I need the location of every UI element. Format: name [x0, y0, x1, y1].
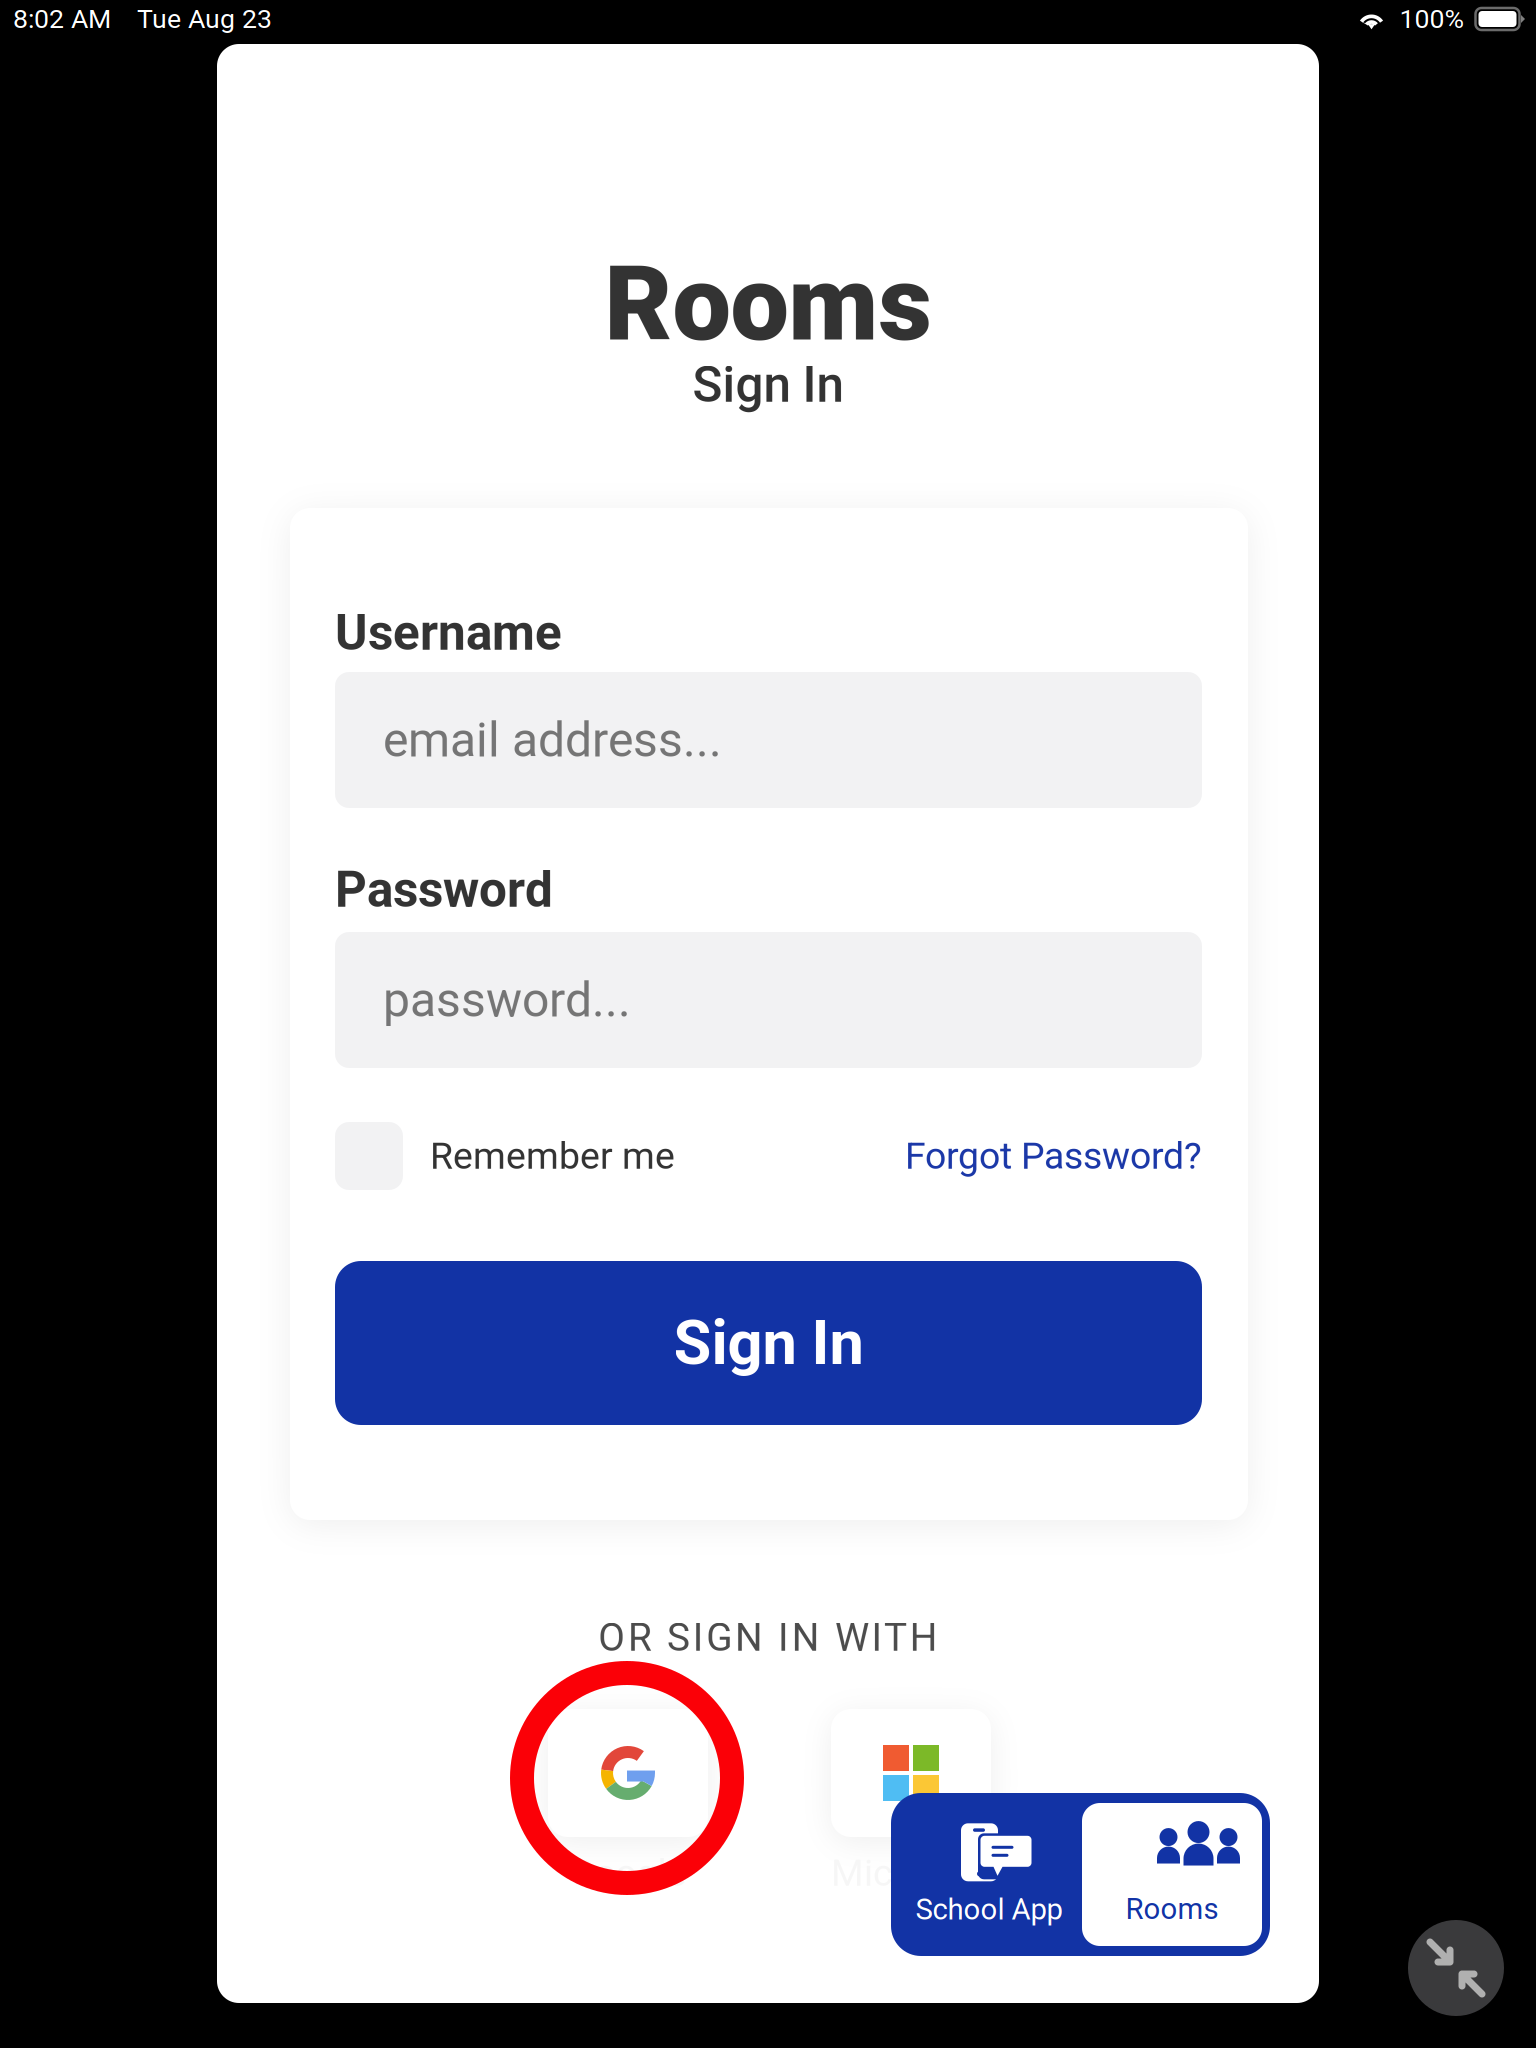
button[interactable]: School App: [899, 1805, 1079, 1945]
staticText: Microsoft: [831, 1851, 991, 1895]
staticText: Remember me: [430, 1134, 675, 1178]
staticText: 8:02 AM: [13, 3, 111, 35]
staticText: OR SIGN IN WITH: [598, 1615, 938, 1660]
staticText: School App: [915, 1892, 1062, 1927]
staticText: password...: [383, 972, 631, 1028]
staticText: Tue Aug 23: [137, 3, 272, 35]
button[interactable]: Remember me: [335, 1122, 675, 1190]
button[interactable]: Google: [548, 1709, 708, 1895]
staticText: 100%: [1399, 3, 1464, 35]
staticText: Forgot Password?: [905, 1134, 1202, 1178]
staticText: Sign In: [673, 1307, 863, 1379]
staticText: email address...: [383, 712, 722, 768]
staticText: Password: [335, 861, 553, 919]
button[interactable]: Password: [335, 932, 1202, 1068]
button[interactable]: Forgot Password?: [905, 1134, 1202, 1178]
button[interactable]: Microsoft: [831, 1709, 991, 1895]
staticText: Username: [335, 604, 562, 662]
button[interactable]: Sign In: [335, 1261, 1202, 1425]
staticText: Sign In: [692, 356, 843, 414]
button[interactable]: Minimize: [1408, 1920, 1504, 2016]
staticText: Rooms: [1125, 1892, 1218, 1926]
button[interactable]: Username: [335, 672, 1202, 808]
staticText: Rooms: [604, 243, 931, 365]
button[interactable]: Rooms: [1082, 1803, 1262, 1946]
staticText: Google: [569, 1851, 686, 1895]
